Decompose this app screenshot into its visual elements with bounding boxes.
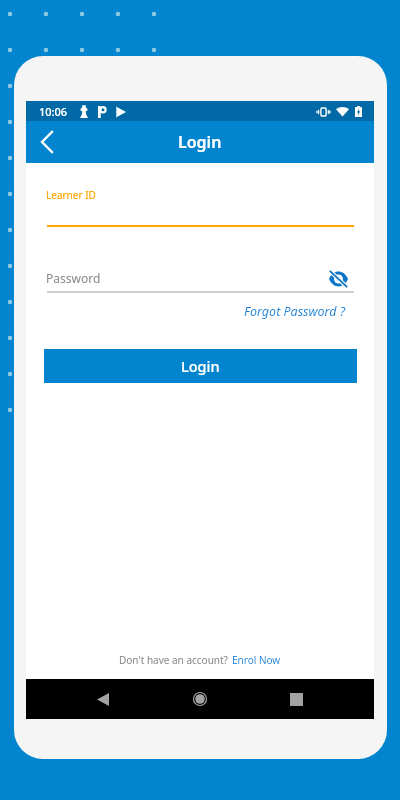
- button[interactable]: Back: [27, 122, 67, 162]
- staticText: Forgot Password ?: [244, 303, 346, 320]
- button[interactable]: Recent apps: [276, 679, 316, 719]
- button[interactable]: Login: [44, 349, 357, 383]
- staticText: Login: [181, 356, 220, 376]
- button[interactable]: Show password: [324, 265, 352, 293]
- staticText: 10:06: [39, 104, 68, 119]
- button[interactable]: Back: [83, 679, 123, 719]
- staticText: Login: [178, 131, 222, 153]
- staticText: Learner ID: [46, 188, 96, 202]
- staticText: Don't have an account?: [119, 653, 228, 667]
- button[interactable]: Password: [47, 261, 354, 292]
- button[interactable]: Forgot Password ?: [233, 300, 346, 322]
- staticText: Password: [46, 270, 101, 286]
- button[interactable]: Enrol Now: [232, 653, 281, 667]
- button[interactable]: Home: [180, 679, 220, 719]
- button[interactable]: Learner ID: [47, 181, 354, 227]
